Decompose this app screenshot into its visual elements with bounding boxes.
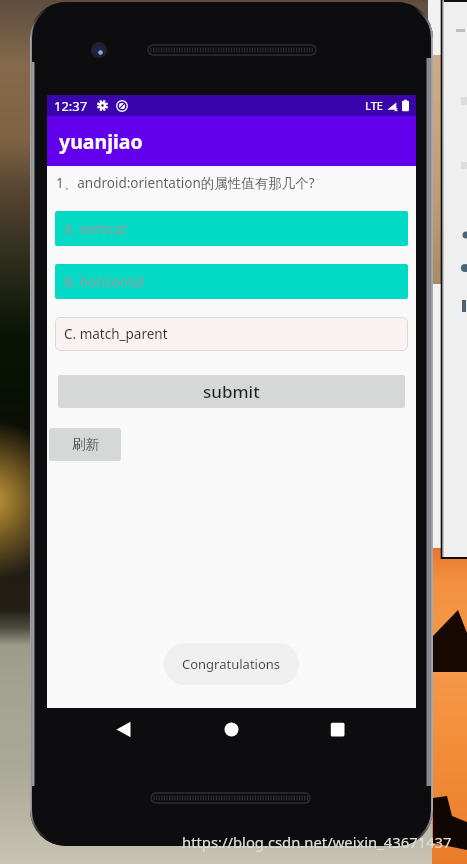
button[interactable]: Congratulations <box>164 643 299 685</box>
staticText: A. vertical <box>64 220 126 238</box>
staticText: yuanjiao <box>59 128 143 155</box>
button[interactable]: A. vertical <box>55 211 408 246</box>
button[interactable]: Back <box>100 708 147 756</box>
button[interactable]: Home <box>208 708 255 756</box>
staticText: https://blog.csdn.net/weixin_43671437 <box>182 832 452 852</box>
staticText: 刷新 <box>72 436 99 453</box>
staticText: 12:37 <box>54 97 88 115</box>
staticText: submit <box>203 380 260 403</box>
button[interactable]: 刷新 <box>49 428 121 461</box>
staticText: C. match_parent <box>64 325 168 343</box>
button[interactable]: B. horizontal <box>55 264 408 299</box>
button[interactable]: C. match_parent <box>55 317 408 351</box>
staticText: B. horizontal <box>64 273 145 291</box>
staticText: LTE <box>365 98 383 113</box>
button[interactable]: submit <box>58 375 405 408</box>
staticText: Congratulations <box>182 655 281 673</box>
button[interactable]: yuanjiao <box>47 116 416 166</box>
button[interactable]: Recent apps <box>314 708 361 756</box>
staticText: 1、android:orientation的属性值有那几个? <box>56 174 315 192</box>
